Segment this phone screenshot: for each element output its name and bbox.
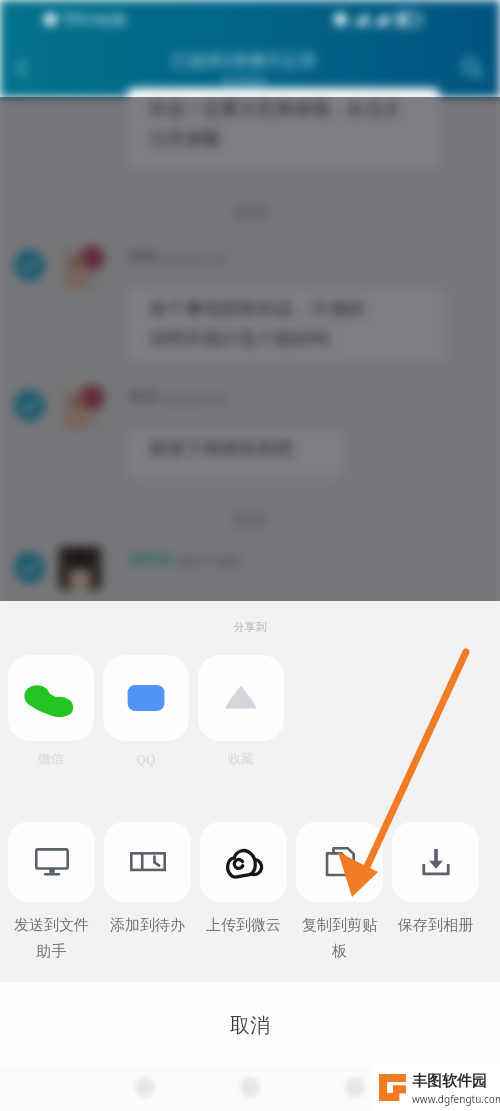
- button[interactable]: WeChat: [8, 655, 94, 766]
- staticText: 下午10:35: [62, 10, 126, 29]
- button[interactable]: QQ: [103, 655, 189, 768]
- other: Copy to clipboard: [322, 844, 358, 880]
- other: Save to album: [419, 845, 453, 879]
- staticText: QQ: [136, 750, 156, 768]
- staticText: 取消: [230, 1013, 270, 1038]
- staticText: 收藏: [228, 750, 254, 766]
- other: Selected: [14, 552, 45, 583]
- staticText: 那就下周再联系吧: [149, 438, 293, 461]
- staticText: 上传到微云: [206, 916, 281, 935]
- staticText: 分享到: [0, 620, 500, 634]
- staticText: 取消选择: [222, 74, 266, 88]
- button[interactable]: Save to album: [392, 822, 479, 935]
- other: Selected: [14, 250, 45, 281]
- other: Upload to cloud: [223, 841, 265, 883]
- staticText: 李明: [129, 389, 157, 407]
- staticText: 微信: [38, 750, 64, 766]
- staticText: 添加到待办: [110, 916, 185, 935]
- staticText: 已选择2条聊天记录: [171, 48, 317, 71]
- other: QQ: [123, 675, 169, 721]
- staticText: 保存到相册: [398, 916, 473, 935]
- button[interactable]: Add to todo: [104, 822, 191, 935]
- staticText: 李明: [129, 249, 157, 267]
- button[interactable]: Copy to clipboard: [296, 822, 383, 961]
- button[interactable]: Favourites: [198, 655, 284, 766]
- button[interactable]: Upload to cloud: [200, 822, 287, 935]
- staticText: 张伟张: [129, 551, 171, 569]
- other: Send to file helper: [35, 845, 69, 879]
- other: Add to todo: [130, 844, 166, 880]
- staticText: 有个事情想和你说，方便的 话明天我们见个面好吗: [149, 298, 365, 350]
- staticText: 复制到剪贴板: [296, 916, 383, 961]
- staticText: 丰图软件园: [412, 1072, 487, 1091]
- staticText: 你也一定要注意身体哦，在北京 注意保暖: [149, 98, 401, 150]
- staticText: www.dgfengtu.com: [412, 1092, 500, 1106]
- staticText: 发送到文件助手: [8, 916, 95, 961]
- other: Favourites: [219, 676, 263, 720]
- other: WeChat: [22, 669, 80, 727]
- other: Selected: [14, 390, 45, 421]
- button[interactable]: 取消: [0, 982, 500, 1068]
- button[interactable]: Send to file helper: [8, 822, 95, 961]
